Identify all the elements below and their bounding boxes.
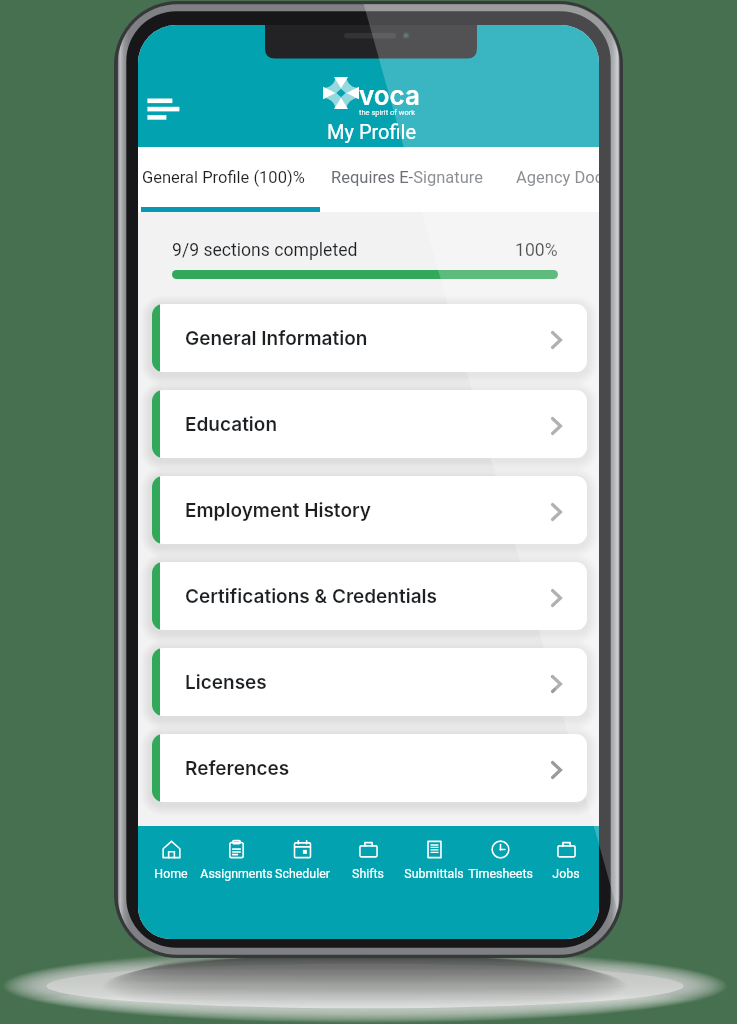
staticText: Home [154,866,188,881]
staticText: Timesheets [468,866,533,881]
staticText: Certifications & Credentials [185,585,437,608]
button[interactable]: Submittals [401,826,467,939]
staticText: Jobs [552,866,580,881]
button[interactable]: Home [138,826,203,939]
staticText: Education [185,413,278,436]
staticText: Licenses [185,671,267,694]
button[interactable]: Certifications & Credentials [152,562,587,630]
staticText: My Profile [327,120,417,143]
staticText: Employment History [185,499,371,522]
button[interactable]: General Information [152,304,587,372]
button[interactable]: Shifts [335,826,401,939]
button[interactable]: Assignments [203,826,269,939]
button[interactable]: Education [152,390,587,458]
staticText: Scheduler [275,866,330,881]
button[interactable]: Jobs [533,826,599,939]
staticText: References [185,757,290,780]
staticText: Requires E-Signature [331,168,483,187]
staticText: Submittals [404,866,464,881]
staticText: 100% [515,240,558,261]
staticText: General Information [185,327,368,350]
button[interactable]: Agency Docs [516,147,599,207]
button[interactable]: Requires E-Signature [331,147,483,207]
staticText: 9/9 sections completed [172,240,358,261]
staticText: Shifts [352,866,384,881]
staticText: Agency Docs [516,168,599,187]
button[interactable]: Open navigation menu [139,98,183,138]
button[interactable]: General Profile (100)% [142,147,305,207]
button[interactable]: References [152,734,587,802]
staticText: voca [359,80,420,111]
staticText: Assignments [200,866,273,881]
button[interactable]: Scheduler [269,826,335,939]
button[interactable]: Timesheets [467,826,533,939]
button[interactable]: Licenses [152,648,587,716]
button[interactable]: Employment History [152,476,587,544]
staticText: General Profile (100)% [142,168,305,187]
staticText: the spirit of work [359,108,416,117]
